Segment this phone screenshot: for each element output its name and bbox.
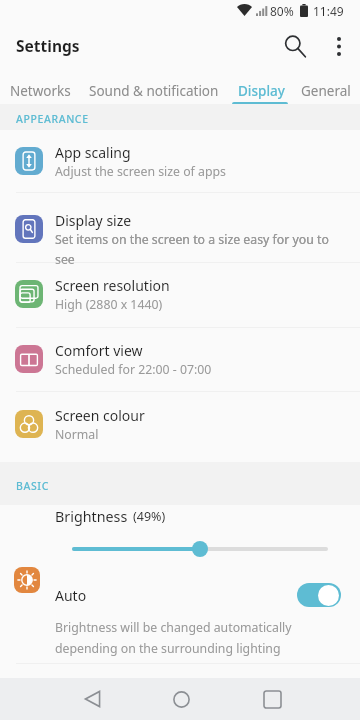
button[interactable]: Back bbox=[70, 678, 114, 720]
button[interactable]: Display bbox=[228, 70, 295, 106]
staticText: Brightness bbox=[55, 507, 128, 526]
staticText: Display size bbox=[55, 211, 132, 230]
button[interactable]: Networks bbox=[2, 70, 79, 106]
button[interactable]: Auto brightness toggle bbox=[297, 583, 341, 607]
staticText: Adjust the screen size of apps bbox=[55, 163, 337, 180]
staticText: High (2880 x 1440) bbox=[55, 296, 337, 313]
staticText: (49%) bbox=[133, 508, 166, 525]
staticText: Display bbox=[238, 82, 285, 100]
staticText: 11:49 bbox=[313, 3, 344, 19]
button[interactable]: Sound & notification bbox=[80, 70, 227, 106]
button[interactable]: Auto bbox=[0, 563, 360, 664]
button[interactable]: Recents bbox=[250, 678, 294, 720]
button[interactable]: General bbox=[293, 70, 359, 106]
button[interactable]: Home bbox=[159, 678, 203, 720]
button[interactable]: Display size bbox=[0, 193, 360, 263]
staticText: Set items on the screen to a size easy f… bbox=[55, 231, 337, 267]
staticText: Screen resolution bbox=[55, 276, 170, 295]
button[interactable]: Comfort view bbox=[0, 328, 360, 392]
button[interactable]: Search bbox=[272, 23, 318, 69]
button[interactable]: App scaling bbox=[0, 130, 360, 193]
staticText: Screen colour bbox=[55, 406, 145, 425]
staticText: Settings bbox=[16, 35, 80, 56]
staticText: App scaling bbox=[55, 143, 131, 162]
staticText: Comfort view bbox=[55, 341, 143, 360]
button[interactable]: More options bbox=[320, 23, 358, 69]
staticText: Sound & notification bbox=[89, 82, 219, 100]
staticText: Networks bbox=[10, 82, 71, 100]
staticText: Auto bbox=[55, 586, 87, 605]
staticText: Set items on the screen to a size easy f… bbox=[55, 231, 337, 267]
staticText: Brightness will be changed automatically… bbox=[55, 619, 310, 657]
staticText: BASIC bbox=[16, 479, 49, 493]
staticText: 80% bbox=[270, 3, 294, 19]
button[interactable]: Screen colour bbox=[0, 392, 360, 462]
staticText: General bbox=[301, 82, 351, 100]
button[interactable]: Screen resolution bbox=[0, 263, 360, 328]
staticText: Scheduled for 22:00 - 07:00 bbox=[55, 361, 337, 378]
staticText: APPEARANCE bbox=[16, 112, 89, 126]
staticText: Normal bbox=[55, 426, 337, 443]
